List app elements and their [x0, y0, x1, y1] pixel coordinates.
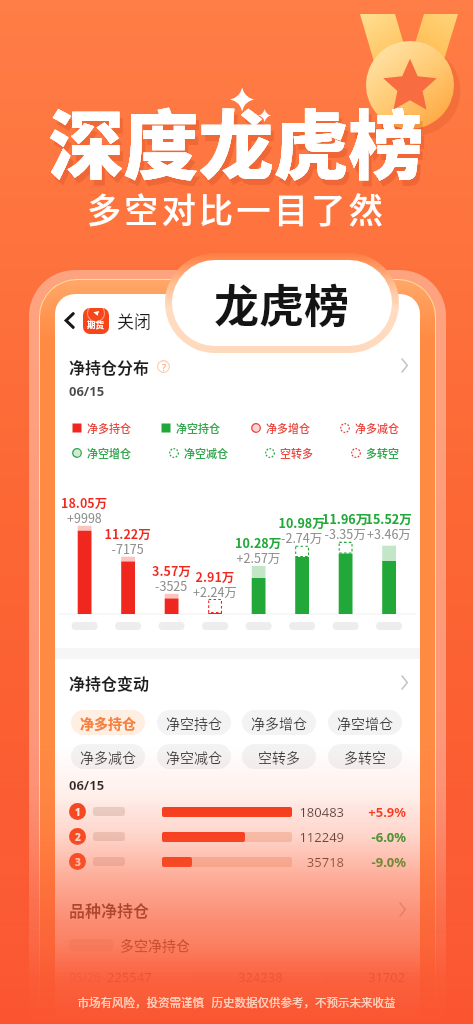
button[interactable]: 1 — [69, 799, 406, 824]
staticText: 期货 — [87, 318, 105, 330]
staticText: 净持仓分布 — [69, 355, 150, 378]
button[interactable]: 品种净持仓 — [69, 898, 406, 921]
staticText: 225547 — [107, 968, 152, 986]
staticText: 净空增仓 — [337, 713, 393, 733]
staticText: 品种净持仓 — [69, 898, 150, 921]
button[interactable]: 3 — [69, 849, 406, 874]
staticText: 净多减仓 — [355, 420, 399, 436]
staticText: 31702 — [368, 968, 406, 986]
staticText: 净空减仓 — [166, 747, 222, 767]
button[interactable]: 净多持仓 — [71, 710, 145, 735]
staticText: 净多减仓 — [80, 747, 136, 767]
staticText: 1 — [75, 805, 81, 819]
staticText: ? — [162, 361, 166, 373]
staticText: 净多增仓 — [251, 713, 307, 733]
staticText: 市场有风险，投资需谨慎 历史数据仅供参考，不预示未来收益 — [0, 994, 473, 1011]
staticText: 净空减仓 — [184, 445, 228, 461]
staticText: 龙虎榜 — [214, 271, 350, 336]
staticText: 35718 — [298, 853, 344, 871]
staticText: -6.0% — [358, 828, 406, 846]
button[interactable]: 净持仓分布 — [69, 355, 408, 400]
button[interactable]: 空转多 — [242, 744, 316, 769]
staticText: 多转空 — [344, 747, 386, 767]
staticText: 多空对比一目了然 — [0, 184, 473, 233]
button[interactable]: 多转空 — [328, 744, 402, 769]
staticText: 净多增仓 — [266, 420, 310, 436]
staticText: 净持仓变动 — [69, 671, 150, 694]
staticText: 324238 — [238, 968, 283, 986]
staticText: 净空持仓 — [166, 713, 222, 733]
staticText: 05/26 — [69, 969, 101, 985]
staticText: 净多持仓 — [80, 713, 136, 733]
button[interactable]: 净持仓变动 — [69, 671, 408, 694]
staticText: 06/15 — [69, 382, 105, 400]
staticText: 2 — [75, 830, 81, 844]
staticText: -9.0% — [358, 853, 406, 871]
staticText: 净多持仓 — [87, 420, 131, 436]
staticText: 180483 — [298, 803, 344, 821]
staticText: 多空净持仓 — [120, 935, 190, 955]
staticText: 多转空 — [366, 445, 399, 461]
button[interactable]: 净多减仓 — [71, 744, 145, 769]
staticText: 净空增仓 — [87, 445, 131, 461]
staticText: 06/15 — [69, 776, 105, 794]
staticText: 3 — [75, 855, 81, 869]
button[interactable]: 龙虎榜 — [172, 260, 392, 346]
staticText: 空转多 — [280, 445, 313, 461]
staticText: 关闭 — [117, 308, 151, 333]
staticText: 空转多 — [258, 747, 300, 767]
button[interactable]: 净空减仓 — [157, 744, 231, 769]
button[interactable]: 净空增仓 — [328, 710, 402, 735]
staticText: +5.9% — [358, 803, 406, 821]
staticText: 112249 — [298, 828, 344, 846]
button[interactable]: 2 — [69, 824, 406, 849]
button[interactable]: Back — [61, 312, 78, 329]
button[interactable]: 净空持仓 — [157, 710, 231, 735]
staticText: 净空持仓 — [176, 420, 220, 436]
button[interactable]: 净多增仓 — [242, 710, 316, 735]
